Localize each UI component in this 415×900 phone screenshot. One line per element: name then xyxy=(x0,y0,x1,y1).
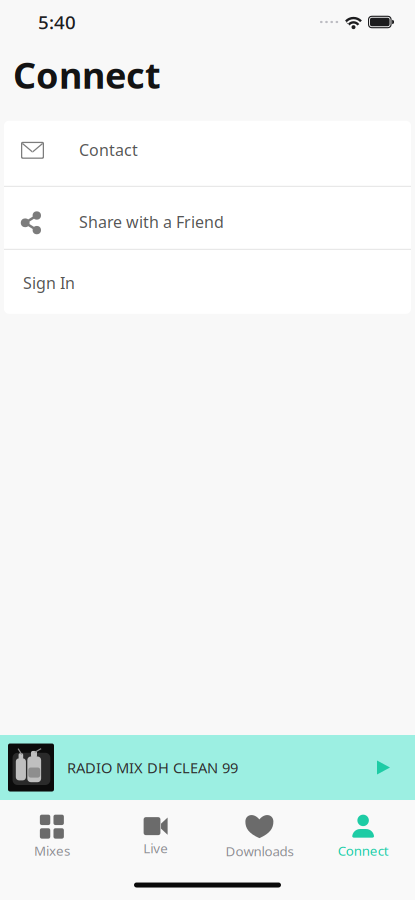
staticText: Mixes xyxy=(34,842,70,859)
button[interactable]: Connect xyxy=(311,806,415,864)
staticText: Live xyxy=(143,839,168,857)
staticText: 5:40 xyxy=(38,10,76,34)
staticText: RADIO MIX DH CLEAN 99 xyxy=(67,758,238,777)
staticText: Sign In xyxy=(23,272,75,293)
button[interactable]: RADIO MIX DH CLEAN 99 xyxy=(0,735,415,800)
staticText: Connect xyxy=(338,842,389,859)
staticText: Connect xyxy=(13,51,161,99)
staticText: Contact xyxy=(79,139,138,160)
button[interactable]: Contact xyxy=(4,121,411,186)
button[interactable]: Downloads xyxy=(207,805,311,865)
button[interactable]: Live xyxy=(104,808,208,862)
staticText: Downloads xyxy=(225,842,293,860)
staticText: Share with a Friend xyxy=(79,211,224,232)
button[interactable]: Mixes xyxy=(0,806,104,864)
button[interactable]: Sign In xyxy=(4,250,411,314)
button[interactable]: Share with a Friend xyxy=(4,187,411,249)
